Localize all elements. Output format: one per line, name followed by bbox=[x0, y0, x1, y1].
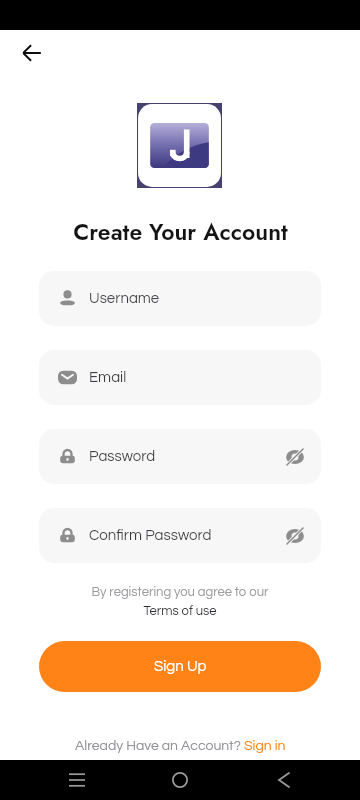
button[interactable]: Password bbox=[39, 429, 321, 484]
button[interactable]: Show password bbox=[283, 524, 307, 548]
staticText: Create Your Account bbox=[73, 215, 288, 248]
staticText: By registering you agree to our bbox=[91, 585, 269, 598]
button[interactable]: Recent apps bbox=[47, 760, 107, 800]
button[interactable]: Email bbox=[39, 350, 321, 405]
staticText: Email bbox=[89, 370, 127, 385]
staticText: Password bbox=[89, 449, 156, 464]
button[interactable]: Home bbox=[150, 760, 210, 800]
staticText: Already Have an Account? bbox=[75, 739, 244, 753]
button[interactable]: Terms of use bbox=[139, 604, 221, 617]
button[interactable]: Confirm Password bbox=[39, 508, 321, 563]
button[interactable]: Show password bbox=[283, 445, 307, 469]
staticText: Username bbox=[89, 291, 160, 306]
button[interactable]: Sign Up bbox=[39, 641, 321, 692]
button[interactable]: Username bbox=[39, 271, 321, 326]
button[interactable]: Back bbox=[12, 33, 52, 73]
staticText: Sign Up bbox=[154, 659, 207, 674]
button[interactable]: Back bbox=[254, 760, 314, 800]
button[interactable]: Sign in bbox=[244, 739, 286, 753]
staticText: Confirm Password bbox=[89, 528, 212, 543]
